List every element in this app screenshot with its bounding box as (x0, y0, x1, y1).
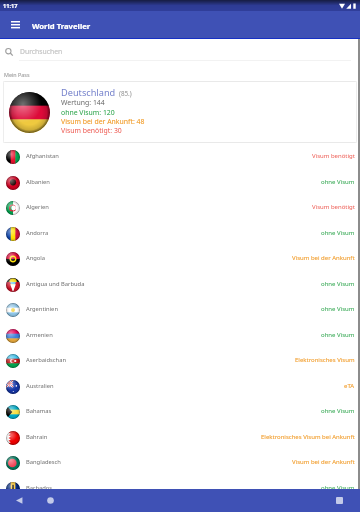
button[interactable]: Barbados (0, 476, 360, 502)
staticText: ohne Visum (321, 331, 355, 339)
staticText: ohne Visum (321, 178, 355, 186)
button[interactable]: Angola (0, 246, 360, 272)
staticText: Albanien (26, 178, 50, 186)
button[interactable]: Open navigation menu (7, 17, 23, 33)
staticText: ohne Visum (321, 484, 355, 492)
staticText: Armenien (26, 331, 53, 339)
staticText: Bangladesch (26, 458, 61, 466)
staticText: Wertung: 144 (61, 98, 105, 107)
button[interactable]: Aserbaidschan (0, 348, 360, 374)
staticText: ohne Visum (321, 229, 355, 237)
button[interactable]: Armenien (0, 323, 360, 349)
staticText: Visum benötigt (312, 203, 355, 211)
button[interactable]: Albanien (0, 170, 360, 196)
button[interactable]: Argentinien (0, 297, 360, 323)
staticText: 11:17 (3, 2, 18, 10)
staticText: Algerien (26, 203, 49, 211)
staticText: Visum bei der Ankunft (292, 254, 355, 262)
staticText: Elektronisches Visum (295, 356, 355, 364)
staticText: Durchsuchen (20, 47, 63, 56)
staticText: World Traveller (32, 21, 91, 31)
staticText: Deutschland (61, 86, 116, 99)
staticText: Aserbaidschan (26, 356, 66, 364)
staticText: ohne Visum (321, 280, 355, 288)
staticText: Australien (26, 382, 54, 390)
button[interactable]: Deutschland (3, 81, 357, 143)
button[interactable]: Algerien (0, 195, 360, 221)
button[interactable]: Home (42, 492, 59, 509)
staticText: ohne Visum: 120 (61, 108, 115, 117)
button[interactable]: Bahamas (0, 399, 360, 425)
staticText: Bahamas (26, 407, 52, 415)
staticText: eTA (344, 382, 355, 390)
staticText: Visum benötigt: 30 (61, 126, 122, 135)
button[interactable]: Afghanistan (0, 144, 360, 170)
staticText: Afghanistan (26, 152, 59, 160)
staticText: Visum bei der Ankunft: 48 (61, 117, 145, 126)
staticText: Visum bei der Ankunft (292, 458, 355, 466)
staticText: Bahrain (26, 433, 48, 441)
staticText: ohne Visum (321, 305, 355, 313)
button[interactable]: Antigua und Barbuda (0, 272, 360, 298)
staticText: Barbados (26, 484, 53, 492)
button[interactable]: Australien (0, 374, 360, 400)
staticText: ohne Visum (321, 407, 355, 415)
staticText: Angola (26, 254, 46, 262)
button[interactable]: Andorra (0, 221, 360, 247)
button[interactable]: Durchsuchen (0, 39, 360, 60)
staticText: Mein Pass (4, 71, 30, 78)
button[interactable]: Bangladesch (0, 450, 360, 476)
staticText: (85.) (119, 89, 132, 98)
staticText: Elektronisches Visum bei Ankunft (261, 433, 355, 441)
staticText: Visum benötigt (312, 152, 355, 160)
staticText: Antigua und Barbuda (26, 280, 85, 288)
button[interactable]: Recent apps (331, 492, 348, 509)
button[interactable]: Bahrain (0, 425, 360, 451)
staticText: Andorra (26, 229, 49, 237)
staticText: Argentinien (26, 305, 58, 313)
button[interactable]: Back (11, 492, 28, 509)
